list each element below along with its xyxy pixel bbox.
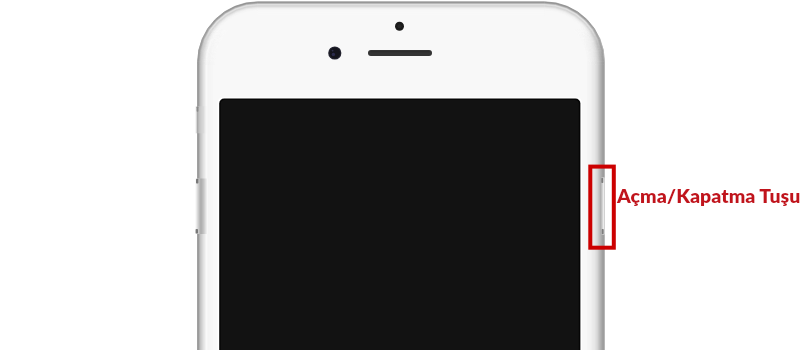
button[interactable]: Power button callout	[586, 162, 800, 350]
staticText: Açma/Kapatma Tuşu	[617, 184, 800, 207]
